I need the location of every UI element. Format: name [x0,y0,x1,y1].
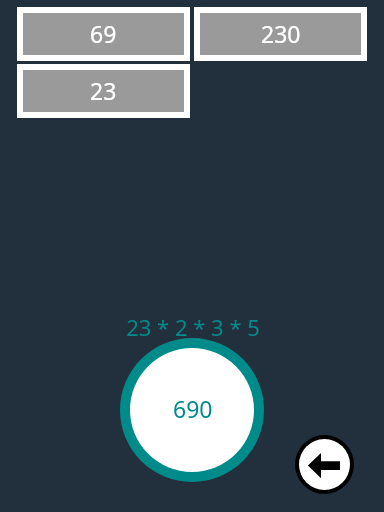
button[interactable]: 69 [17,7,190,61]
staticText: 23 [90,75,117,106]
button[interactable]: 230 [194,7,367,61]
staticText: 690 [173,393,213,424]
staticText: 23 * 2 * 3 * 5 [126,312,260,342]
staticText: 69 [90,18,117,49]
button[interactable]: 690 [120,338,264,482]
button[interactable]: Back [295,435,354,494]
staticText: 230 [261,18,301,49]
button[interactable]: 23 [17,64,190,118]
